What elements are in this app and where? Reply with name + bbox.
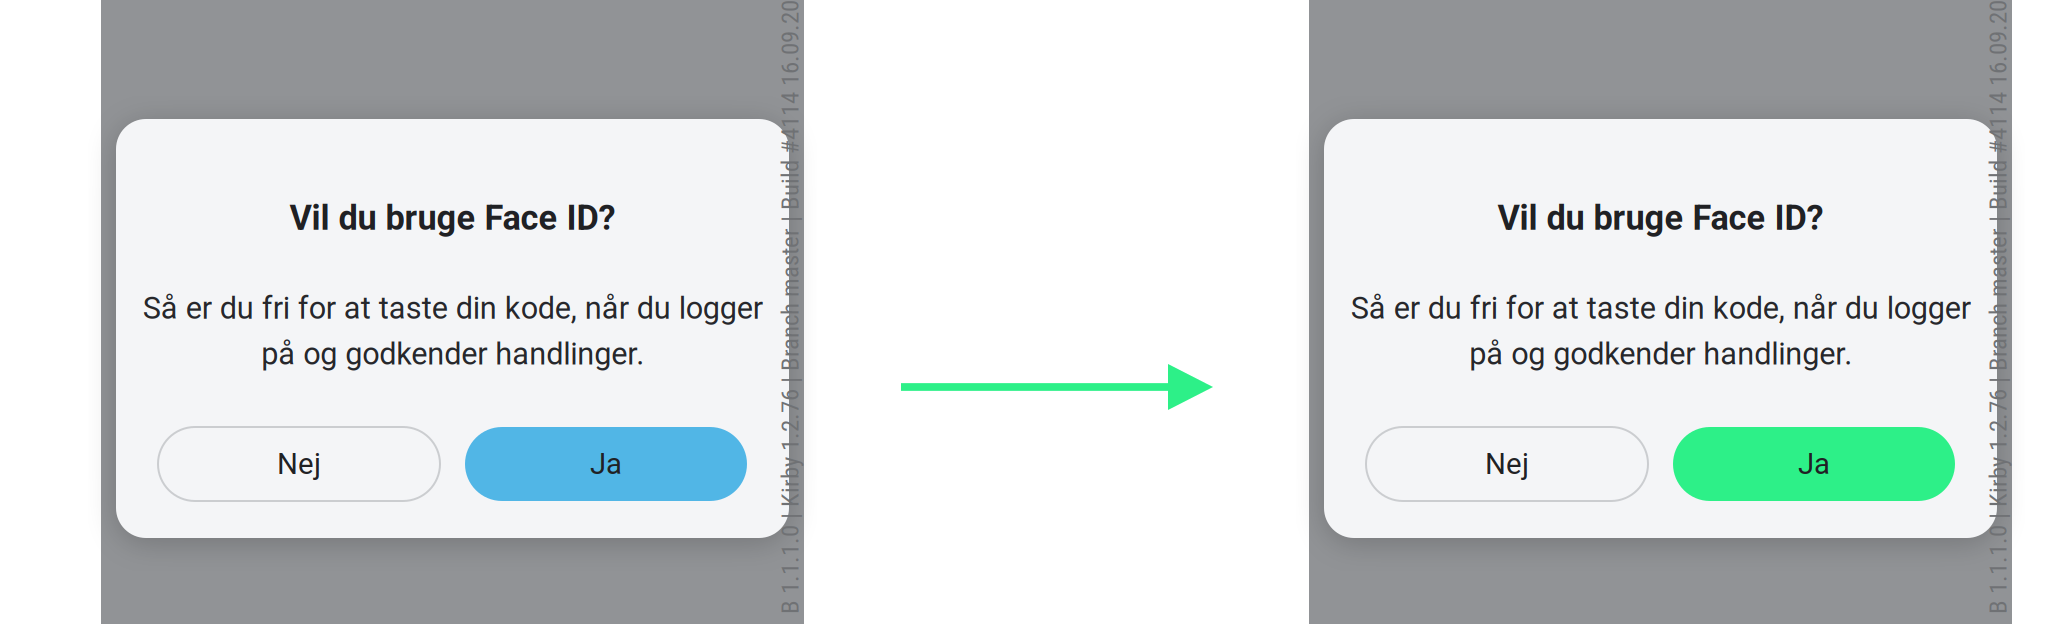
button[interactable]: Nej [158, 427, 440, 501]
staticText: Ja [590, 447, 622, 481]
staticText: Så er du fri for at taste din kode, når … [1350, 290, 1970, 372]
button[interactable]: Nej [1366, 427, 1648, 501]
staticText: B 1.1.1.0 | Kirby 1.2.76 | Branch master… [1696, 297, 2052, 327]
staticText: Nej [1485, 447, 1529, 481]
staticText: Vil du bruge Face ID? [289, 198, 615, 238]
staticText: B 1.1.1.0 | Kirby 1.2.76 | Branch master… [488, 297, 1102, 327]
staticText: Ja [1798, 447, 1830, 481]
staticText: Nej [277, 447, 321, 481]
staticText: Vil du bruge Face ID? [1497, 198, 1823, 238]
button[interactable]: Ja [1673, 427, 1955, 501]
staticText: Så er du fri for at taste din kode, når … [142, 290, 762, 372]
button[interactable]: Ja [465, 427, 747, 501]
